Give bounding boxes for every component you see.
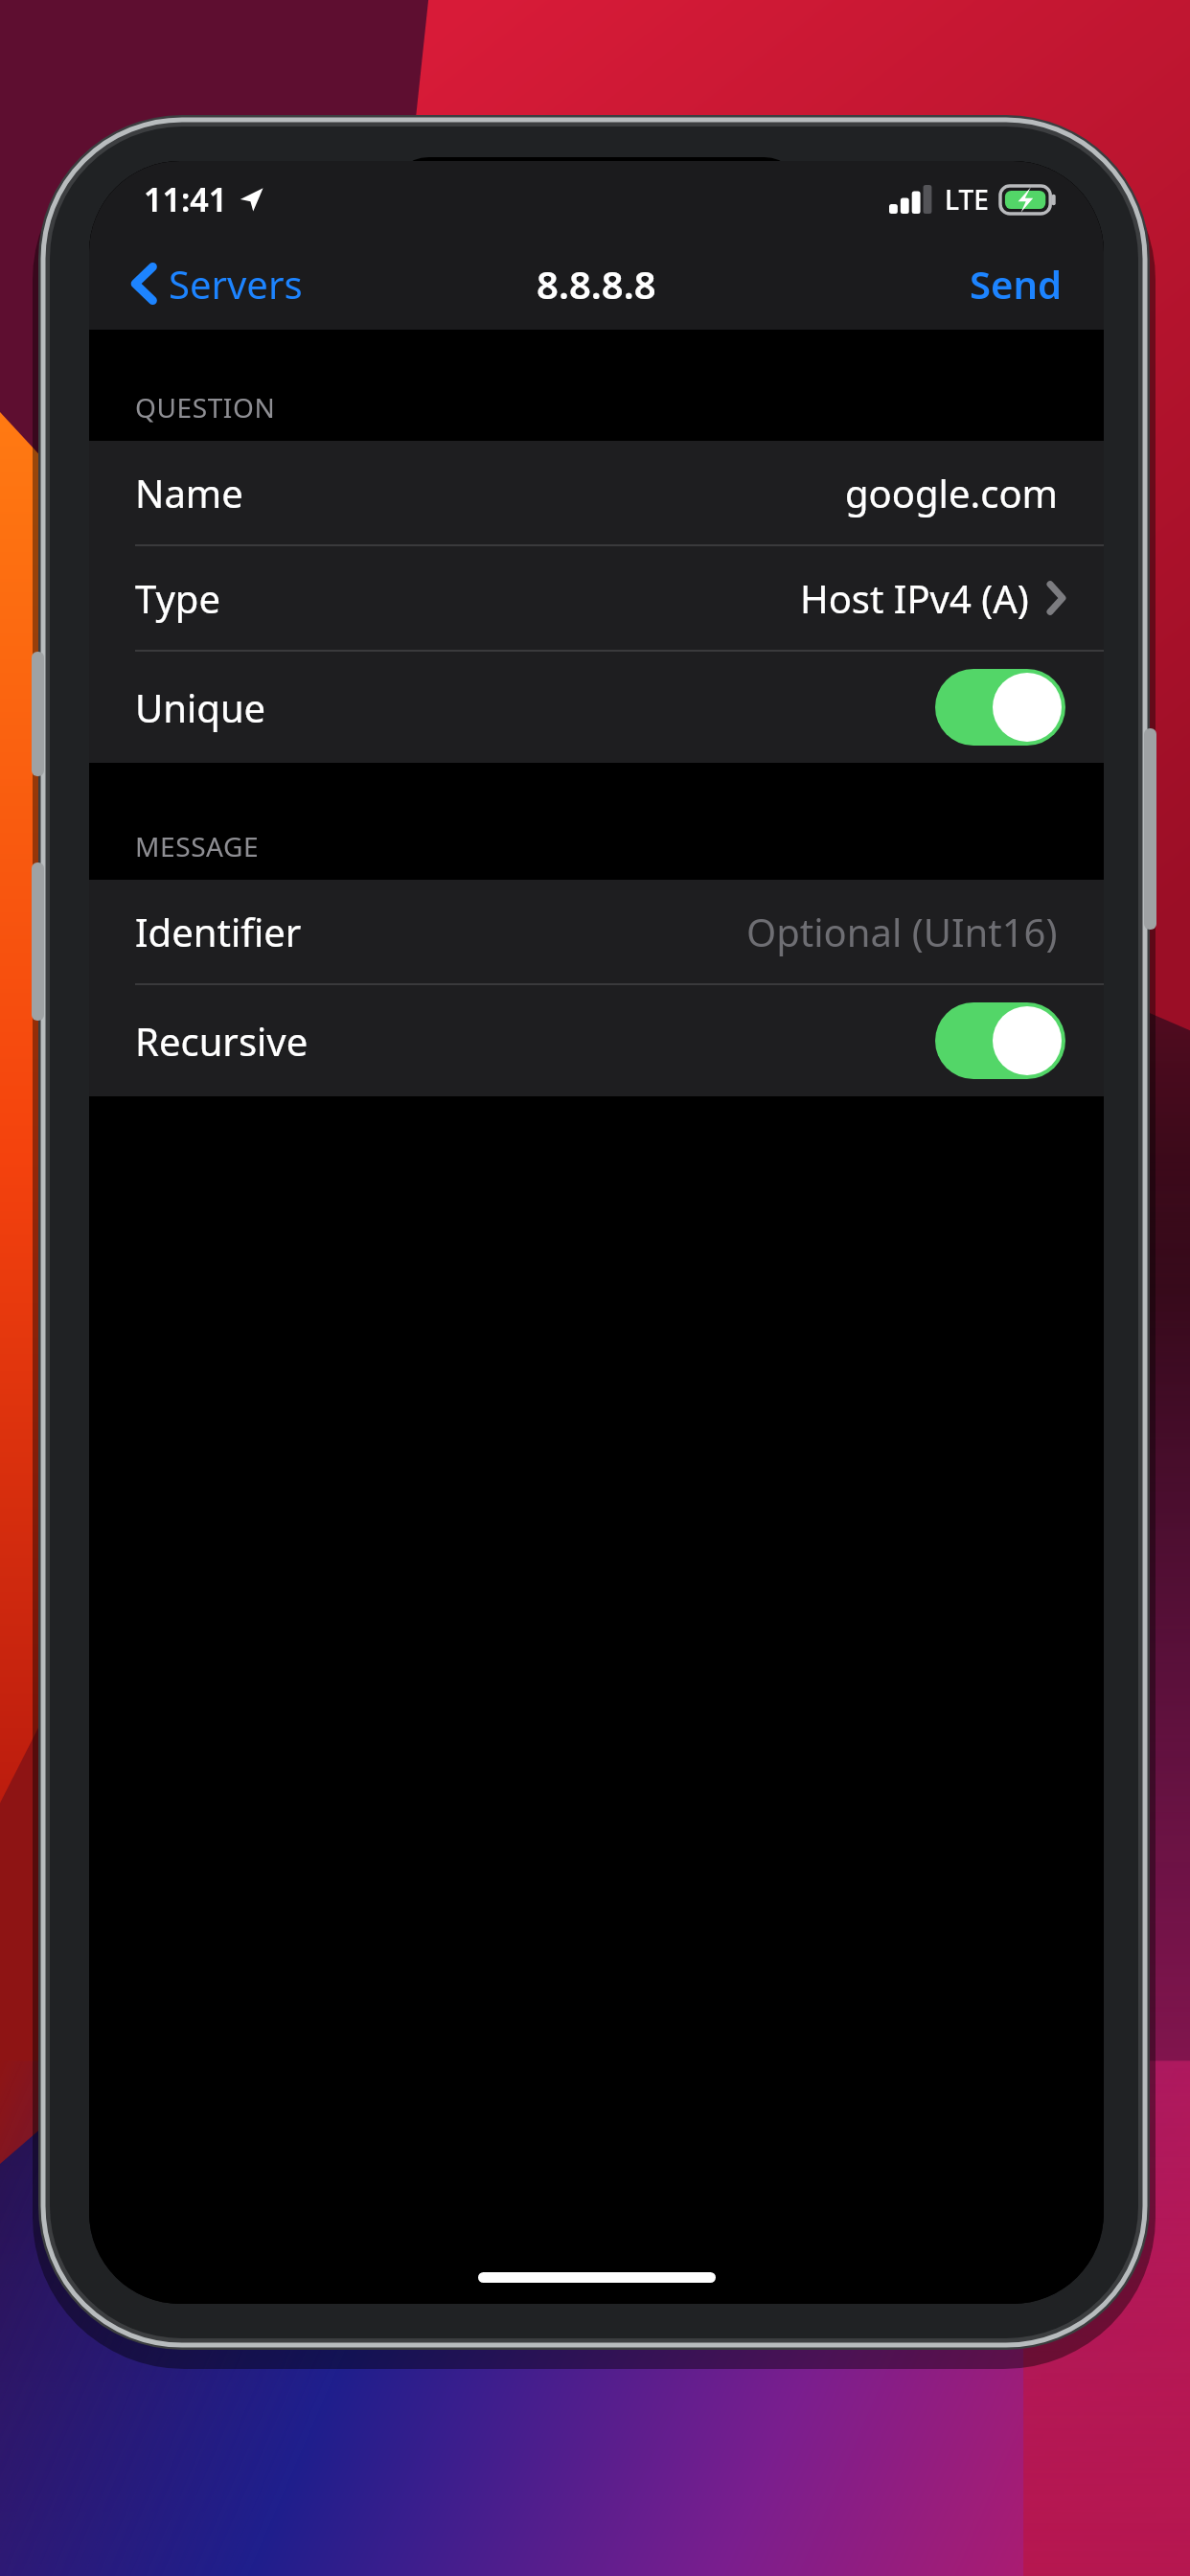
staticText: Recursive <box>135 1015 309 1067</box>
button[interactable]: Identifier <box>89 880 1104 983</box>
staticText: 11:41 <box>144 177 228 221</box>
button[interactable]: Servers <box>89 246 320 321</box>
staticText: Type <box>135 572 220 624</box>
button[interactable]: Name <box>89 441 1104 544</box>
staticText: Unique <box>135 681 266 733</box>
button[interactable]: Unique <box>89 652 1104 763</box>
staticText: Identifier <box>135 906 302 957</box>
staticText: QUESTION <box>135 389 276 425</box>
staticText: Send <box>970 258 1062 310</box>
button[interactable]: Recursive <box>89 985 1104 1096</box>
staticText: Optional (UInt16) <box>746 906 1058 957</box>
staticText: Name <box>135 467 243 518</box>
staticText: google.com <box>845 467 1058 518</box>
staticText: Servers <box>169 258 303 310</box>
button[interactable]: Unique toggle, on <box>935 669 1065 746</box>
staticText: LTE <box>945 181 989 218</box>
button[interactable]: Recursive toggle, on <box>935 1002 1065 1079</box>
button[interactable]: Type <box>89 546 1104 650</box>
staticText: Host IPv4 (A) <box>800 572 1029 624</box>
button[interactable]: Send <box>927 244 1104 323</box>
staticText: MESSAGE <box>135 828 260 864</box>
staticText: 8.8.8.8 <box>537 258 656 310</box>
